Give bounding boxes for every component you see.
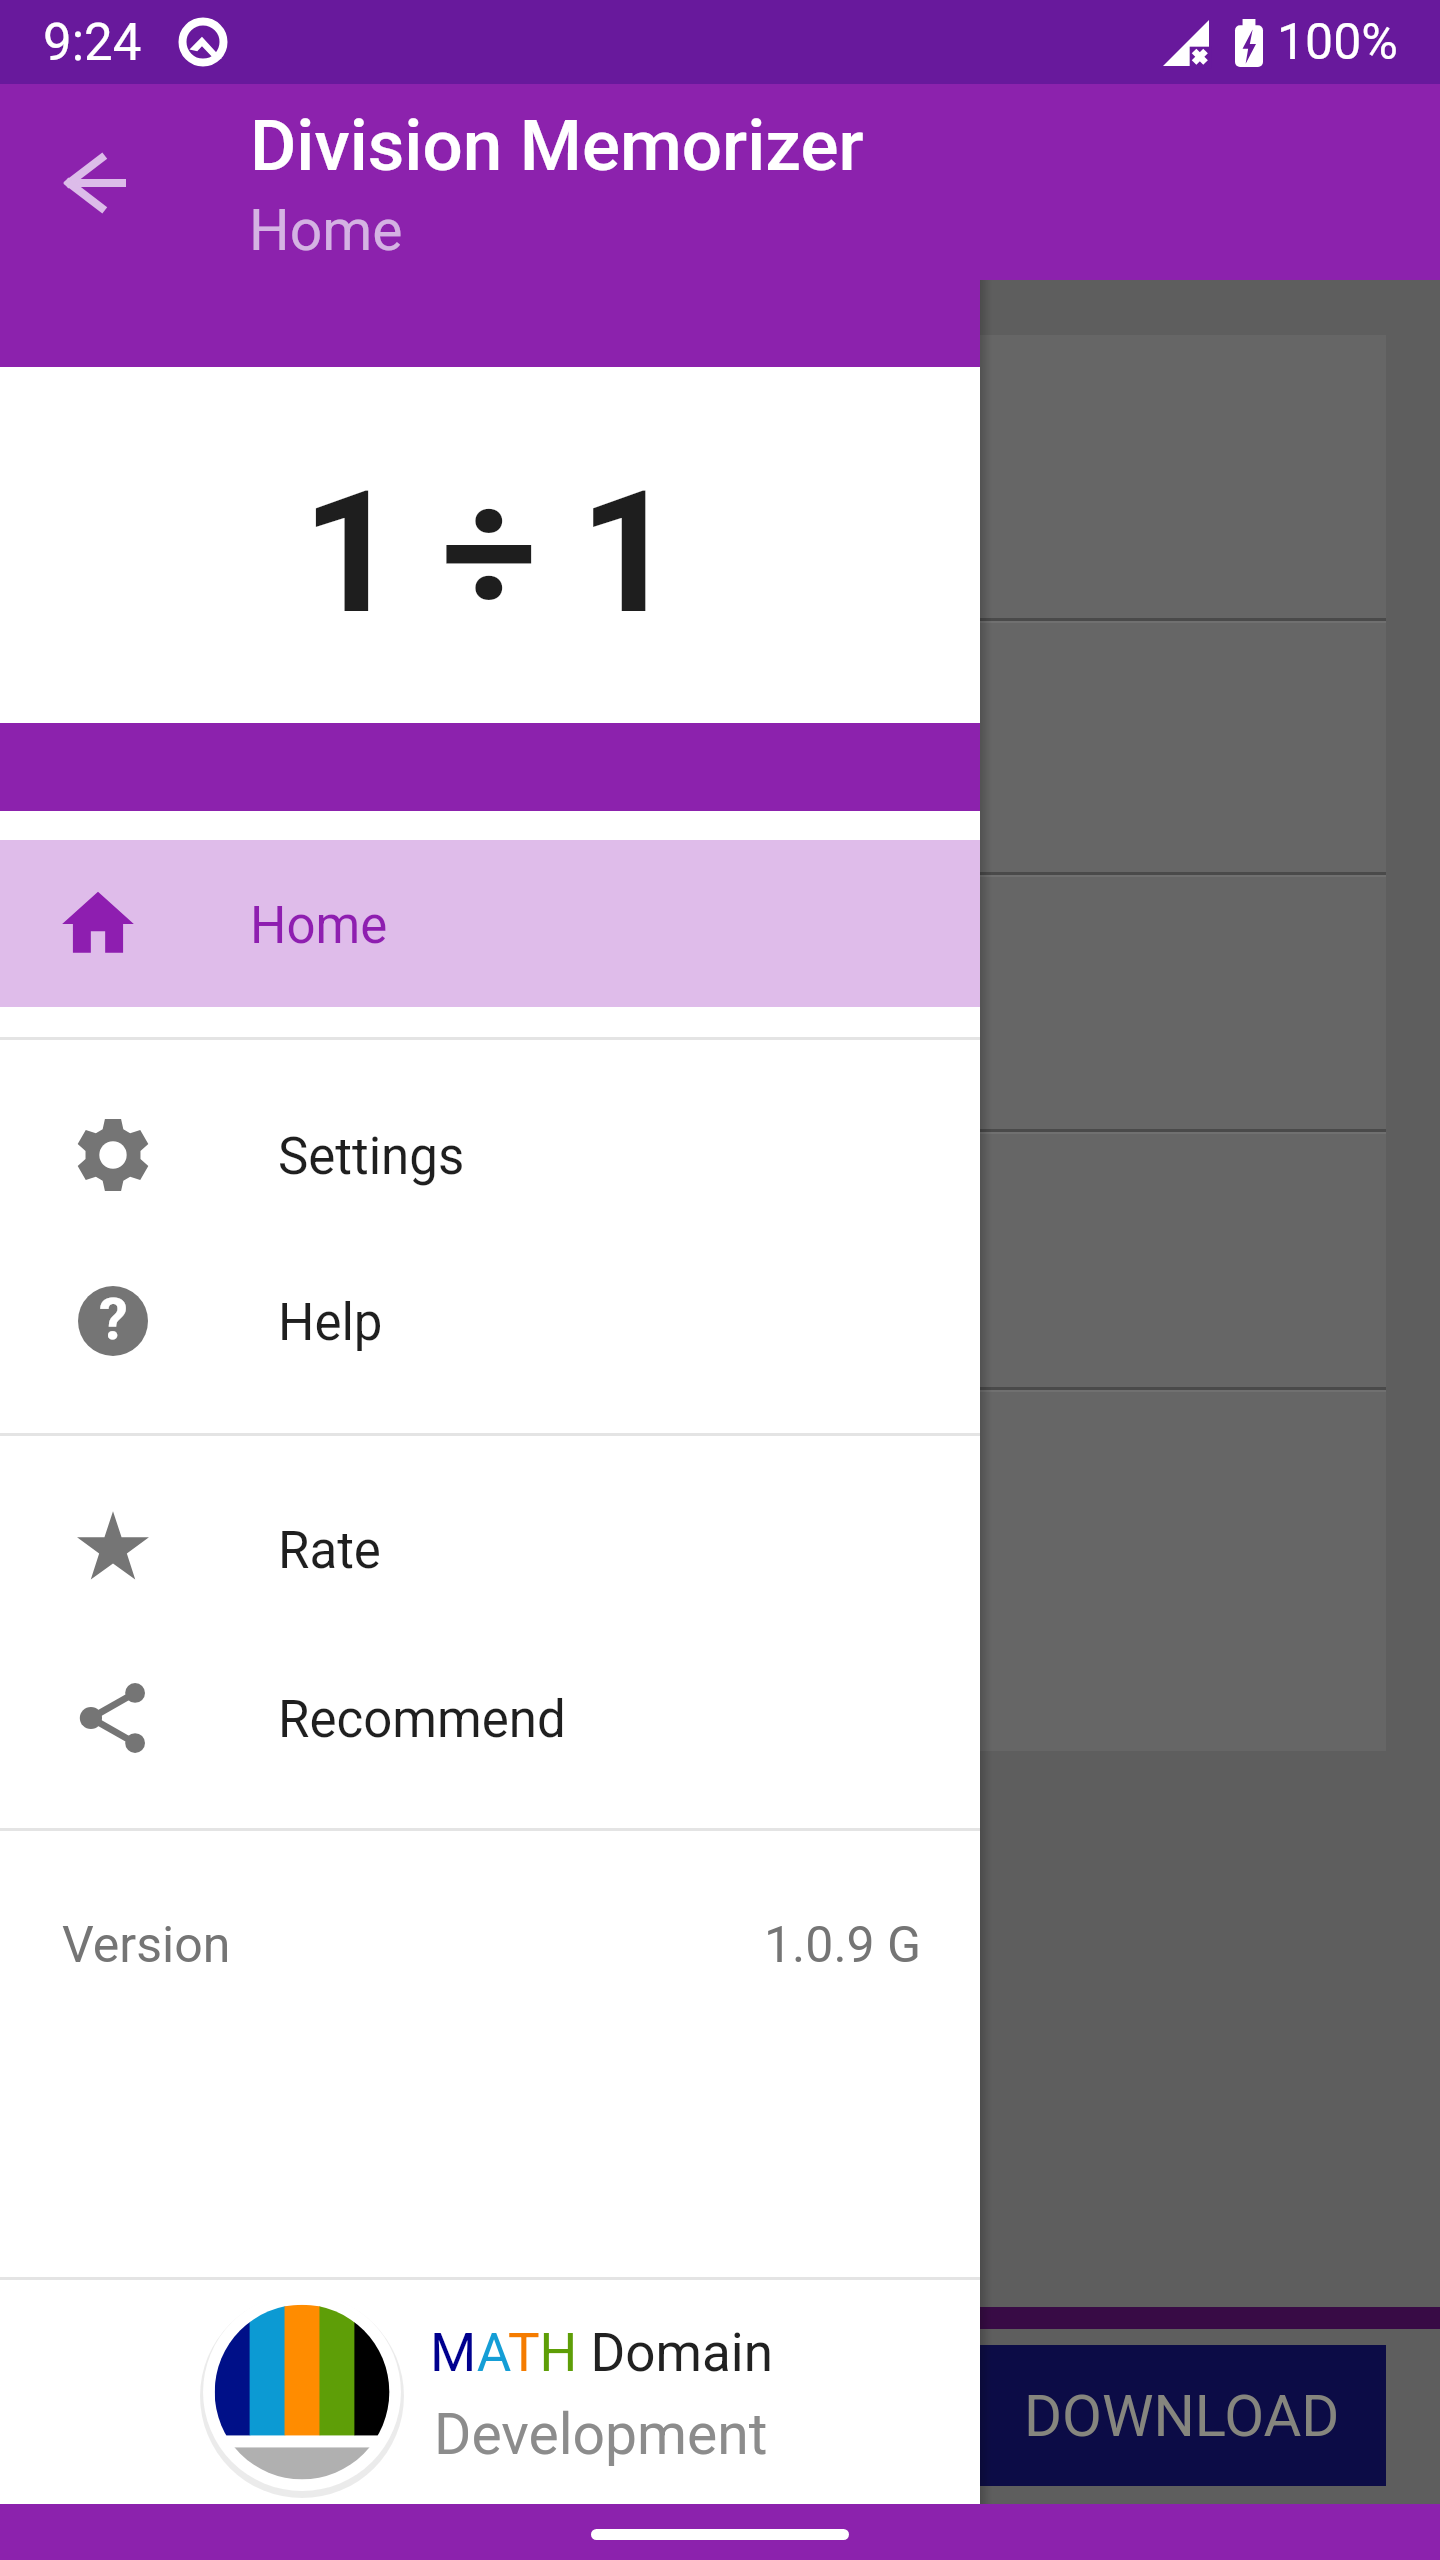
staticText: Home [249,197,403,264]
staticText: Settings [278,1127,465,1187]
staticText: 100% [1277,13,1398,72]
button[interactable]: Back [35,123,155,243]
staticText: DOWNLOAD [1024,2382,1340,2450]
staticText: Help [278,1293,383,1353]
button[interactable]: MATH Domain [0,2280,980,2504]
staticText: ? [99,1285,128,1353]
staticText: MATH Domain [430,2322,774,2384]
staticText: Development [434,2401,768,2468]
staticText: Home [250,896,388,956]
button[interactable]: Settings [0,1071,980,1238]
button[interactable]: Rate [0,1465,980,1632]
staticText: Recommend [278,1690,566,1750]
staticText: 9:24 [43,13,142,73]
staticText: Version [62,1916,231,1975]
staticText: 1 ÷ 1 [302,454,677,652]
staticText: Rate [278,1521,381,1581]
button[interactable]: Version [0,1860,980,2030]
staticText: Division Memorizer [250,104,864,187]
staticText: 1.0.9 G [764,1916,922,1975]
button[interactable]: DOWNLOAD [54,2345,1386,2486]
button[interactable]: Recommend [0,1634,980,1801]
button[interactable]: ? [0,1237,980,1404]
button[interactable]: Home [0,840,980,1007]
